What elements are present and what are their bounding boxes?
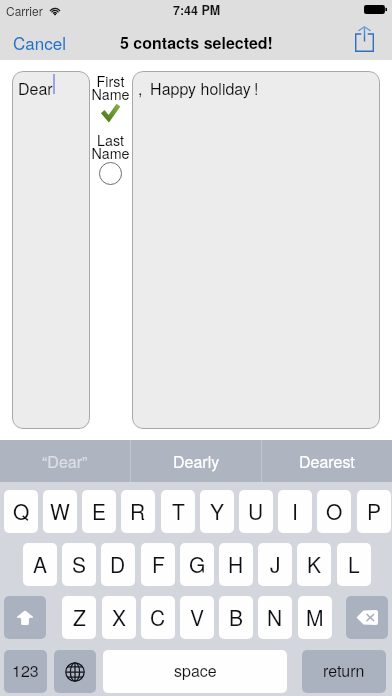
- button[interactable]: Z: [62, 596, 96, 639]
- staticText: E: [92, 496, 107, 526]
- staticText: Cancel: [13, 30, 66, 54]
- staticText: First Name: [89, 71, 132, 104]
- button[interactable]: Switch keyboard: [54, 650, 96, 693]
- button[interactable]: L: [337, 543, 371, 586]
- staticText: A: [33, 549, 48, 579]
- staticText: I: [292, 496, 298, 526]
- staticText: Z: [73, 602, 86, 632]
- staticText: W: [50, 496, 70, 526]
- staticText: J: [270, 549, 281, 579]
- staticText: N: [267, 602, 283, 632]
- staticText: , Happy holiday !: [138, 77, 259, 100]
- button[interactable]: N: [258, 596, 292, 639]
- staticText: space: [174, 659, 217, 682]
- staticText: D: [110, 549, 126, 579]
- staticText: F: [152, 549, 165, 579]
- staticText: O: [326, 496, 343, 526]
- staticText: L: [348, 549, 360, 579]
- staticText: V: [190, 602, 205, 632]
- button[interactable]: B: [219, 596, 253, 639]
- staticText: M: [306, 602, 324, 632]
- button[interactable]: U: [239, 490, 273, 533]
- staticText: Dearly: [173, 450, 220, 473]
- button[interactable]: , Happy holiday !: [132, 71, 380, 429]
- button[interactable]: space: [103, 650, 287, 693]
- staticText: X: [112, 602, 127, 632]
- button[interactable]: S: [62, 543, 96, 586]
- staticText: P: [367, 496, 382, 526]
- staticText: G: [189, 549, 206, 579]
- button[interactable]: Share: [342, 20, 392, 60]
- staticText: R: [130, 496, 146, 526]
- button[interactable]: P: [357, 490, 391, 533]
- staticText: Q: [13, 496, 30, 526]
- button[interactable]: H: [219, 543, 253, 586]
- staticText: B: [229, 602, 244, 632]
- staticText: “Dear”: [42, 450, 88, 473]
- button[interactable]: I: [278, 490, 312, 533]
- staticText: 5 contacts selected!: [120, 31, 273, 54]
- button[interactable]: Shift: [4, 596, 46, 639]
- button[interactable]: Delete: [346, 596, 388, 639]
- staticText: Dear: [18, 77, 53, 100]
- staticText: 123: [12, 659, 39, 682]
- button[interactable]: A: [23, 543, 57, 586]
- button[interactable]: E: [82, 490, 116, 533]
- staticText: S: [72, 549, 87, 579]
- staticText: 7:44 PM: [173, 1, 221, 19]
- button[interactable]: Dear: [12, 71, 90, 429]
- staticText: Last Name: [89, 130, 132, 163]
- button[interactable]: Dearly: [131, 440, 261, 482]
- button[interactable]: J: [258, 543, 292, 586]
- button[interactable]: Dearest: [262, 440, 392, 482]
- button[interactable]: T: [161, 490, 195, 533]
- button[interactable]: Q: [4, 490, 38, 533]
- staticText: U: [248, 496, 264, 526]
- button[interactable]: O: [317, 490, 351, 533]
- button[interactable]: “Dear”: [0, 440, 130, 482]
- button[interactable]: V: [180, 596, 214, 639]
- button[interactable]: C: [141, 596, 175, 639]
- staticText: Carrier: [6, 2, 43, 19]
- staticText: C: [150, 602, 166, 632]
- staticText: Y: [210, 496, 225, 526]
- button[interactable]: R: [121, 490, 155, 533]
- button[interactable]: return: [302, 650, 386, 693]
- button[interactable]: Y: [200, 490, 234, 533]
- button[interactable]: Cancel: [0, 20, 79, 62]
- button[interactable]: X: [102, 596, 136, 639]
- staticText: T: [172, 496, 185, 526]
- button[interactable]: 123: [4, 650, 47, 693]
- button[interactable]: F: [141, 543, 175, 586]
- staticText: H: [228, 549, 244, 579]
- button[interactable]: M: [298, 596, 332, 639]
- staticText: Dearest: [299, 450, 355, 473]
- button[interactable]: K: [297, 543, 331, 586]
- button[interactable]: W: [43, 490, 77, 533]
- staticText: return: [323, 659, 365, 682]
- button[interactable]: D: [101, 543, 135, 586]
- button[interactable]: G: [180, 543, 214, 586]
- staticText: K: [307, 549, 322, 579]
